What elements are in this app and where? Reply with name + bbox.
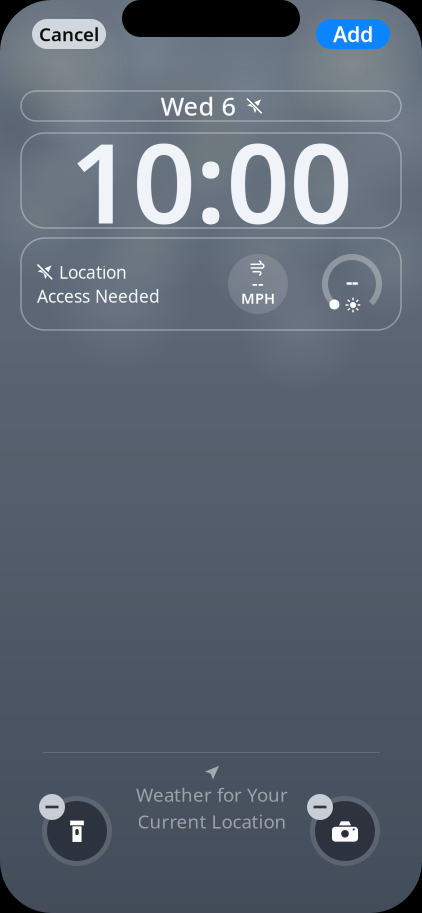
staticText: Current Location bbox=[137, 809, 286, 834]
button[interactable]: 10:00 bbox=[21, 133, 401, 228]
staticText: -- bbox=[346, 268, 358, 294]
button[interactable]: Location bbox=[21, 238, 401, 330]
button[interactable]: Cancel bbox=[32, 19, 106, 49]
staticText: 10:00 bbox=[69, 107, 352, 254]
staticText: Cancel bbox=[39, 22, 99, 46]
button[interactable]: Remove Flashlight bbox=[34, 788, 120, 874]
staticText: Access Needed bbox=[37, 284, 160, 307]
button[interactable]: Remove Camera bbox=[302, 788, 388, 874]
staticText: -- bbox=[252, 271, 264, 294]
staticText: Location bbox=[59, 260, 127, 283]
staticText: MPH bbox=[241, 288, 275, 308]
staticText: Add bbox=[333, 20, 373, 48]
button[interactable]: Add bbox=[316, 19, 390, 49]
staticText: Wed 6 bbox=[160, 89, 235, 123]
staticText: Weather for Your bbox=[136, 782, 288, 807]
button[interactable]: Wed 6 bbox=[21, 91, 401, 121]
